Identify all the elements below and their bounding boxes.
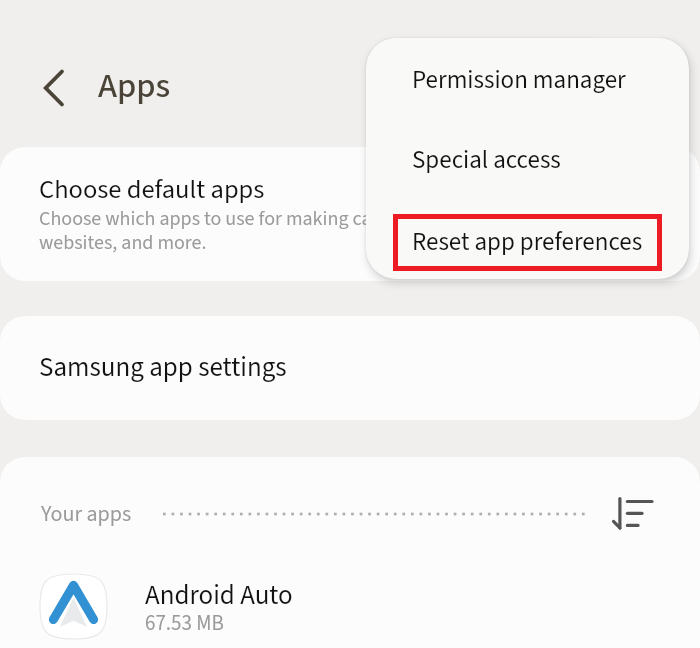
staticText: Your apps — [41, 498, 132, 529]
staticText: Permission manager — [412, 62, 626, 98]
button[interactable]: Special access — [366, 126, 689, 192]
staticText: Choose default apps — [39, 171, 265, 209]
button[interactable]: Reset app preferences — [366, 208, 689, 274]
button[interactable]: Navigate up — [29, 63, 79, 113]
staticText: Samsung app settings — [39, 348, 287, 386]
staticText: Special access — [412, 142, 561, 178]
staticText: Choose which apps to use for making call… — [39, 205, 637, 257]
staticText: Reset app preferences — [412, 224, 643, 260]
button[interactable]: Sort order — [600, 477, 656, 533]
button[interactable]: Android Auto — [0, 560, 700, 648]
staticText: Apps — [98, 62, 171, 111]
button[interactable]: Samsung app settings — [0, 316, 700, 420]
staticText: 67.53 MB — [145, 608, 224, 638]
button[interactable]: Permission manager — [366, 46, 689, 112]
button[interactable]: Choose default apps — [0, 147, 700, 281]
staticText: Android Auto — [145, 576, 293, 614]
